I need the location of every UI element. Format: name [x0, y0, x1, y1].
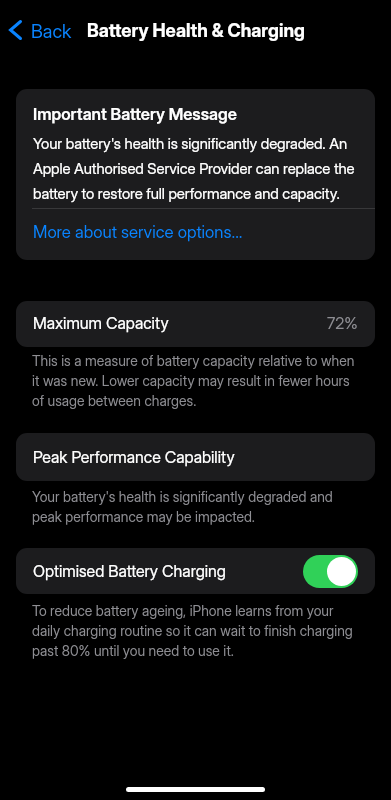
button[interactable]: Maximum Capacity [16, 301, 375, 347]
button[interactable]: Peak Performance Capability [16, 433, 375, 481]
staticText: 72% [327, 313, 358, 332]
staticText: Optimised Battery Charging [33, 561, 226, 580]
staticText: Important Battery Message [33, 104, 237, 124]
button[interactable]: Optimised Battery Charging [303, 555, 358, 588]
staticText: Maximum Capacity [33, 313, 169, 332]
staticText: More about service options... [33, 222, 243, 242]
staticText: Back [31, 20, 72, 40]
staticText: To reduce battery ageing, iPhone learns … [32, 602, 359, 659]
staticText: Peak Performance Capability [33, 447, 235, 466]
staticText: Battery Health & Charging [87, 19, 305, 41]
staticText: This is a measure of battery capacity re… [32, 352, 359, 409]
staticText: Your battery's health is significantly d… [33, 134, 363, 203]
button[interactable]: Back [0, 15, 80, 45]
staticText: Your battery's health is significantly d… [32, 488, 359, 525]
button[interactable]: More about service options... [16, 209, 375, 260]
